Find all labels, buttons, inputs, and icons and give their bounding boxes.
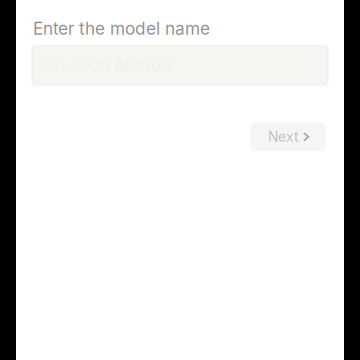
staticText: Next <box>268 128 299 145</box>
staticText: Enter the model name <box>33 18 210 39</box>
button[interactable]: Next <box>250 123 326 151</box>
